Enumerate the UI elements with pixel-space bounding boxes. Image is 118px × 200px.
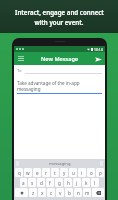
button[interactable]: y: [60, 168, 68, 177]
button[interactable]: h: [64, 178, 72, 187]
staticText: Take advantage of the in-app messaging: [17, 80, 102, 92]
staticText: l: [94, 180, 96, 186]
staticText: f: [49, 180, 51, 186]
button[interactable]: d: [37, 178, 45, 187]
staticText: b: [68, 190, 71, 196]
button[interactable]: t: [51, 168, 59, 177]
staticText: d: [40, 180, 43, 186]
button[interactable]: v: [56, 188, 64, 197]
staticText: x: [41, 190, 44, 196]
staticText: z: [32, 190, 35, 196]
button[interactable]: o: [87, 168, 95, 177]
staticText: t: [54, 170, 56, 176]
staticText: u: [72, 170, 75, 176]
staticText: p: [99, 170, 102, 176]
button[interactable]: u: [69, 168, 77, 177]
staticText: r: [45, 170, 47, 176]
button[interactable]: n: [74, 188, 82, 197]
button[interactable]: b: [65, 188, 73, 197]
button[interactable]: To: [17, 68, 102, 74]
staticText: g: [58, 180, 61, 186]
staticText: y: [63, 170, 66, 176]
staticText: e: [36, 170, 39, 176]
staticText: i: [81, 170, 83, 176]
staticText: m: [85, 190, 90, 196]
button[interactable]: Take advantage of the in-app messaging: [17, 80, 102, 94]
button[interactable]: k: [82, 178, 90, 187]
staticText: Interact, engage and connect: [15, 8, 104, 16]
staticText: with your event.: [34, 18, 84, 26]
button[interactable]: New Message: [41, 55, 79, 63]
button[interactable]: m: [83, 188, 91, 197]
button[interactable]: i: [78, 168, 86, 177]
button[interactable]: p: [96, 168, 104, 177]
button[interactable]: a: [20, 178, 27, 187]
staticText: n: [77, 190, 80, 196]
staticText: o: [90, 170, 93, 176]
button[interactable]: e: [33, 168, 41, 177]
staticText: k: [85, 180, 88, 186]
button[interactable]: j: [73, 178, 81, 187]
button[interactable]: r: [42, 168, 50, 177]
button[interactable]: q: [15, 168, 23, 177]
staticText: s: [31, 180, 34, 186]
staticText: To: [17, 68, 22, 74]
staticText: h: [67, 180, 70, 186]
button[interactable]: g: [55, 178, 63, 187]
button[interactable]: messaging: [49, 161, 71, 167]
button[interactable]: f: [46, 178, 54, 187]
staticText: a: [22, 180, 25, 186]
staticText: c: [50, 190, 53, 196]
button[interactable]: x: [38, 188, 46, 197]
button[interactable]: l: [91, 178, 99, 187]
button[interactable]: Menu: [16, 54, 25, 63]
button[interactable]: w: [24, 168, 32, 177]
button[interactable]: Shift: [15, 188, 28, 197]
button[interactable]: Send: [93, 54, 103, 64]
staticText: v: [59, 190, 62, 196]
button[interactable]: Backspace: [92, 188, 104, 197]
staticText: j: [76, 180, 78, 186]
button[interactable]: s: [28, 178, 36, 187]
button[interactable]: c: [47, 188, 55, 197]
staticText: 10:14: [94, 47, 103, 52]
button[interactable]: z: [29, 188, 37, 197]
staticText: q: [18, 170, 21, 176]
staticText: w: [26, 170, 30, 176]
